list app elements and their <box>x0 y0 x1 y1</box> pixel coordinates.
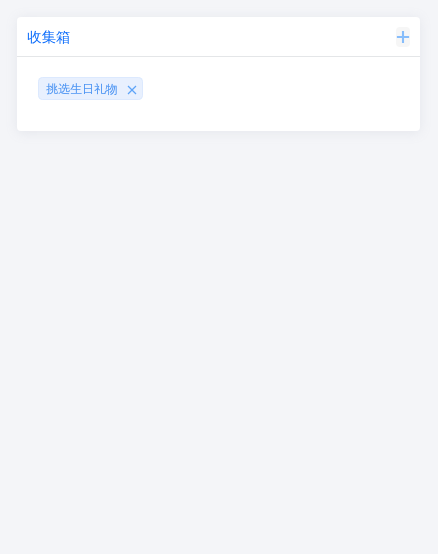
button[interactable]: Add item <box>396 27 410 47</box>
button[interactable]: 挑选生日礼物 <box>38 77 143 100</box>
staticText: 收集箱 <box>27 28 71 46</box>
staticText: 挑选生日礼物 <box>46 82 118 97</box>
